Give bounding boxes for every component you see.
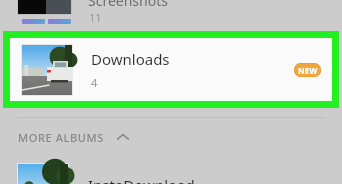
button[interactable]: MORE ALBUMS <box>18 126 132 148</box>
button[interactable]: Screenshots <box>0 0 342 31</box>
staticText: MORE ALBUMS <box>18 130 104 145</box>
staticText: 4 <box>91 75 98 90</box>
staticText: 11 <box>89 10 102 25</box>
button[interactable]: InstaDownload <box>0 156 342 184</box>
staticText: InstaDownload <box>88 175 195 184</box>
staticText: Downloads <box>91 49 170 69</box>
staticText: NEW <box>298 65 318 76</box>
staticText: Screenshots <box>88 0 168 10</box>
button[interactable]: Downloads <box>10 38 332 101</box>
button[interactable]: NEW <box>294 63 321 77</box>
other: Collapse more albums <box>114 128 132 146</box>
